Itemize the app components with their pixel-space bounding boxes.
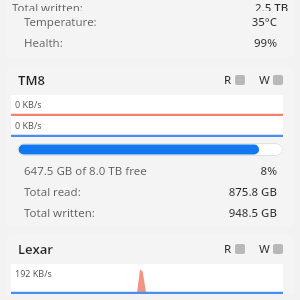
staticText: Temperature:: [24, 14, 97, 30]
staticText: 0 KB/s: [15, 119, 42, 131]
staticText: W: [259, 72, 270, 88]
staticText: Total read:: [24, 184, 81, 200]
button[interactable]: Health:: [12, 32, 288, 53]
staticText: 192 KB/s: [15, 267, 52, 279]
staticText: TM8: [18, 71, 45, 89]
button[interactable]: 0 KB/s: [11, 95, 283, 116]
staticText: R: [224, 72, 232, 88]
button[interactable]: Lexar: [6, 237, 294, 261]
button[interactable]: Total written:: [6, 0, 294, 11]
staticText: 99%: [254, 35, 277, 51]
button[interactable]: TM8: [6, 68, 294, 92]
staticText: 35°C: [251, 14, 277, 30]
button[interactable]: Write activity indicator: [259, 241, 283, 257]
staticText: Lexar: [18, 240, 53, 258]
staticText: W: [259, 241, 270, 257]
staticText: R: [224, 241, 232, 257]
staticText: 2.5 TB: [255, 0, 289, 11]
button[interactable]: [6, 140, 294, 159]
staticText: 875.8 GB: [228, 184, 277, 200]
button[interactable]: Temperature:: [12, 11, 288, 32]
button[interactable]: 647.5 GB of 8.0 TB free: [12, 160, 288, 181]
button[interactable]: Total read:: [12, 181, 288, 202]
staticText: Total written:: [24, 205, 95, 221]
button[interactable]: 0 KB/s: [11, 116, 283, 137]
button[interactable]: Write activity indicator: [259, 72, 283, 88]
staticText: Health:: [24, 35, 63, 51]
button[interactable]: Read activity indicator: [224, 241, 245, 257]
button[interactable]: 192 KB/s: [11, 264, 283, 294]
staticText: 0 KB/s: [15, 98, 42, 110]
staticText: Total written:: [12, 0, 83, 11]
staticText: 948.5 GB: [228, 205, 277, 221]
button[interactable]: Read activity indicator: [224, 72, 245, 88]
staticText: 8%: [260, 163, 277, 179]
staticText: 647.5 GB of 8.0 TB free: [24, 163, 147, 179]
button[interactable]: Total written:: [12, 202, 288, 223]
